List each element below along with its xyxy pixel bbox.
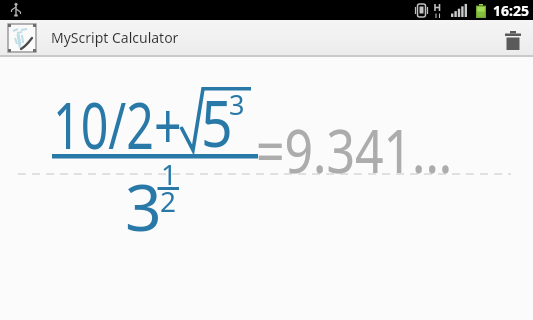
- staticText: 5: [201, 80, 234, 166]
- staticText: 3: [229, 86, 245, 123]
- staticText: 2: [160, 182, 177, 220]
- staticText: 3: [125, 163, 162, 250]
- button[interactable]: [8, 24, 36, 52]
- staticText: =9.341...: [256, 108, 452, 191]
- button[interactable]: [494, 21, 528, 55]
- staticText: 16:25: [493, 1, 529, 20]
- staticText: MyScript Calculator: [51, 28, 179, 47]
- staticText: 1: [161, 155, 178, 193]
- staticText: 10/2+: [53, 82, 182, 168]
